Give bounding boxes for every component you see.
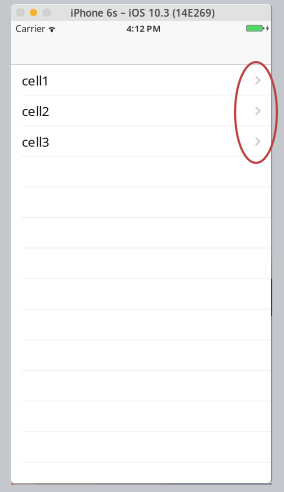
staticText: iPhone 6s – iOS 10.3 (14E269) <box>70 6 214 20</box>
staticText: 4:12 PM <box>126 22 160 34</box>
button[interactable] <box>11 157 271 187</box>
staticText: Carrier <box>15 22 45 35</box>
button[interactable]: cell2 <box>11 96 271 126</box>
staticText: cell2 <box>22 102 50 120</box>
staticText: cell3 <box>22 132 50 151</box>
button[interactable] <box>11 463 271 492</box>
button[interactable]: cell3 <box>11 126 271 157</box>
staticText: cell1 <box>22 71 50 89</box>
button[interactable]: cell1 <box>11 65 271 96</box>
